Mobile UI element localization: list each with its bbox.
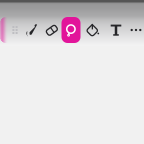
button[interactable]: Lasso select [61, 17, 80, 43]
button[interactable]: Brush [22, 15, 44, 45]
button[interactable]: Shapes [4, 15, 26, 45]
button[interactable]: Fill [82, 15, 104, 45]
button[interactable]: Eraser [41, 15, 63, 45]
button[interactable]: More [126, 15, 144, 45]
button[interactable]: Text [105, 15, 127, 45]
